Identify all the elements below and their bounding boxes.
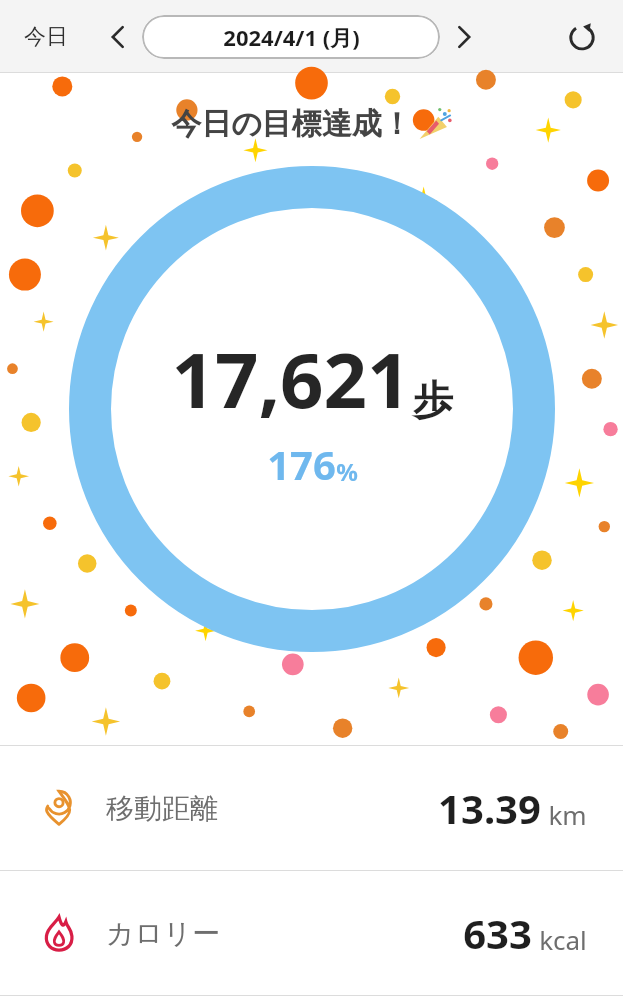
staticText: 今日の目標達成！ (171, 105, 412, 143)
staticText: 176 (267, 437, 336, 491)
staticText: 633 (463, 906, 532, 960)
staticText: 13.39 (438, 781, 541, 835)
button[interactable]: 次の日 (442, 15, 486, 59)
staticText: 17,621 (171, 327, 411, 431)
button[interactable]: 2024/4/1 (月) (142, 15, 440, 59)
staticText: 歩 (413, 375, 453, 425)
staticText: km (548, 797, 587, 832)
button[interactable]: 前の日 (96, 15, 140, 59)
staticText: 2024/4/1 (月) (223, 22, 360, 52)
staticText: カロリー (106, 916, 220, 951)
button[interactable]: 今日 (18, 17, 74, 57)
staticText: % (336, 455, 358, 488)
button[interactable]: 移動距離 (0, 746, 623, 870)
staticText: 今日 (24, 23, 68, 51)
button[interactable]: カロリー (0, 871, 623, 995)
button[interactable]: 更新 (559, 14, 605, 60)
staticText: 移動距離 (106, 791, 218, 826)
staticText: kcal (539, 922, 587, 957)
